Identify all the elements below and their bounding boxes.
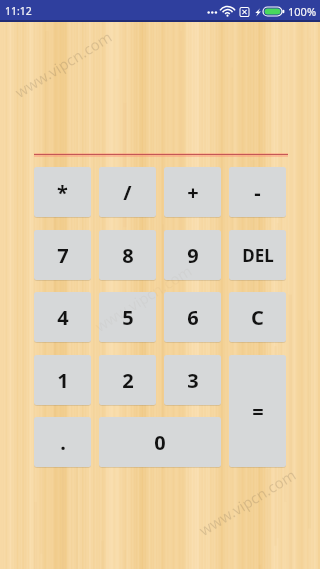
staticText: 100% — [288, 4, 317, 19]
staticText: 9 — [187, 242, 199, 269]
button[interactable]: 2 — [99, 355, 156, 405]
button[interactable]: 6 — [164, 292, 221, 342]
staticText: 11:12 — [5, 4, 32, 18]
button[interactable]: 7 — [34, 230, 91, 280]
staticText: 4 — [57, 304, 69, 331]
staticText: + — [187, 179, 199, 206]
staticText: 8 — [122, 242, 134, 269]
staticText: * — [57, 179, 68, 206]
button[interactable]: / — [99, 167, 156, 217]
staticText: 7 — [57, 242, 69, 269]
button[interactable]: * — [34, 167, 91, 217]
button[interactable]: C — [229, 292, 286, 342]
staticText: www.vipcn.com — [91, 260, 196, 336]
staticText: C — [251, 304, 264, 331]
staticText: www.vipcn.com — [11, 26, 116, 102]
staticText: 5 — [122, 304, 134, 331]
button[interactable]: DEL — [229, 230, 286, 280]
button[interactable]: 0 — [99, 417, 221, 467]
staticText: www.vipcn.com — [195, 464, 300, 540]
button[interactable]: 3 — [164, 355, 221, 405]
button[interactable]: 9 — [164, 230, 221, 280]
button[interactable]: 4 — [34, 292, 91, 342]
staticText: - — [254, 179, 261, 206]
button[interactable]: - — [229, 167, 286, 217]
staticText: = — [252, 398, 264, 425]
staticText: DEL — [242, 244, 274, 267]
button[interactable]: + — [164, 167, 221, 217]
staticText: 3 — [187, 367, 199, 394]
button[interactable]: 8 — [99, 230, 156, 280]
button[interactable]: 1 — [34, 355, 91, 405]
staticText: . — [60, 429, 66, 456]
staticText: 1 — [57, 367, 69, 394]
staticText: 2 — [122, 367, 134, 394]
staticText: / — [123, 179, 132, 206]
button[interactable]: . — [34, 417, 91, 467]
staticText: 6 — [187, 304, 199, 331]
staticText: 0 — [154, 429, 166, 456]
button[interactable]: 5 — [99, 292, 156, 342]
button[interactable]: = — [229, 355, 286, 467]
